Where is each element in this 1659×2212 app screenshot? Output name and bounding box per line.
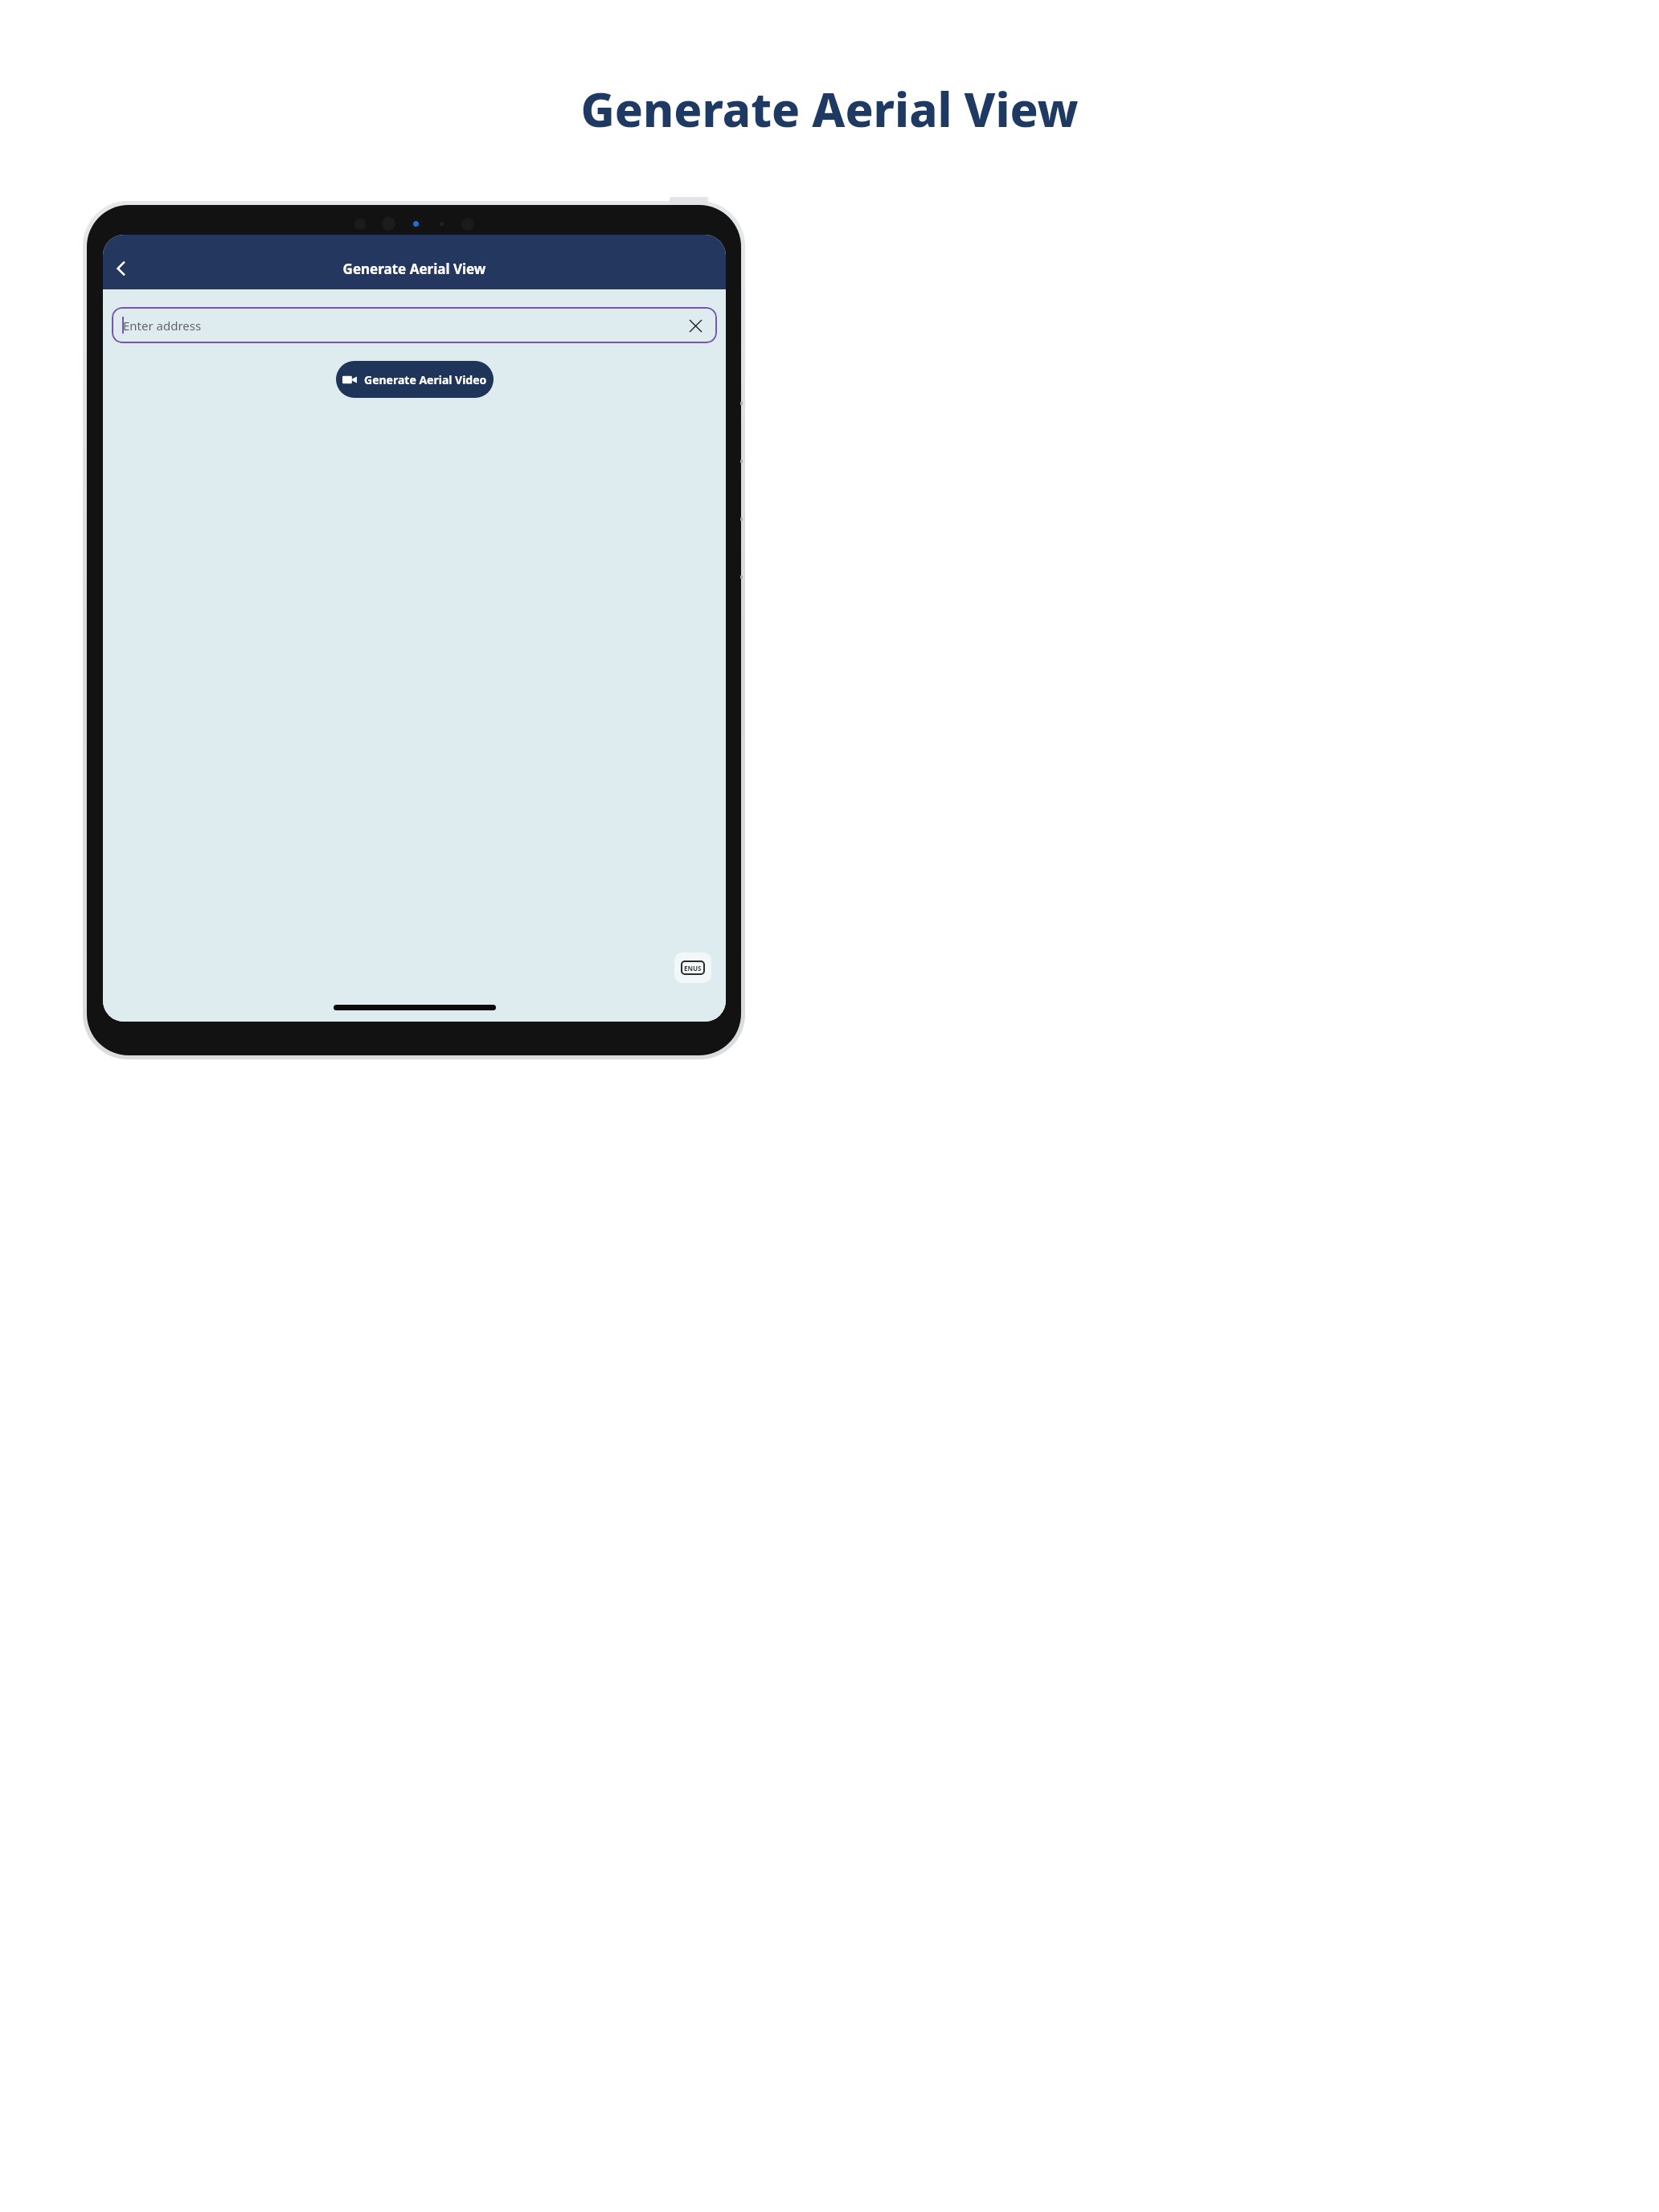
staticText: Generate Aerial View: [103, 260, 726, 278]
button[interactable]: Back: [103, 250, 140, 287]
staticText: Enter address: [123, 317, 202, 334]
staticText: Generate Aerial View: [0, 77, 1659, 141]
staticText: ENUS: [684, 964, 702, 973]
button[interactable]: Clear address: [685, 315, 706, 336]
staticText: Generate Aerial Video: [364, 372, 487, 387]
button[interactable]: Change keyboard language: [674, 952, 711, 983]
button[interactable]: Enter address: [112, 307, 717, 343]
button[interactable]: Generate Aerial Video: [336, 361, 494, 398]
